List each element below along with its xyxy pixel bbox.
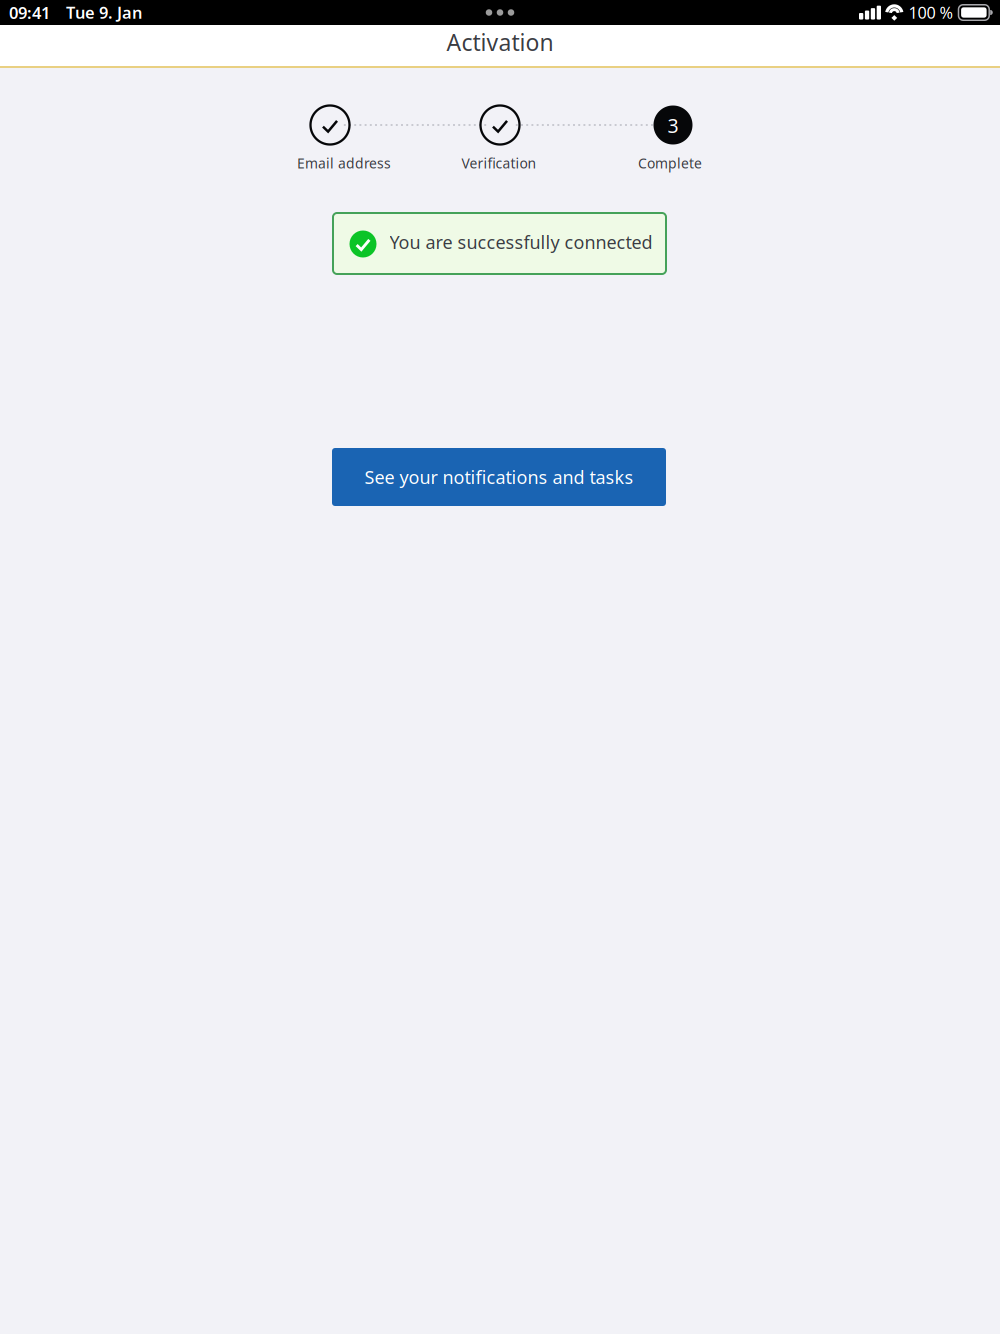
staticText: 09:41 [9, 1, 50, 24]
staticText: Activation [446, 26, 553, 58]
staticText: You are successfully connected [389, 230, 652, 254]
staticText: Verification [461, 154, 536, 172]
staticText: 100 % [908, 1, 953, 24]
staticText: Tue 9. Jan [66, 1, 142, 24]
staticText: 3 [667, 112, 678, 139]
staticText: Complete [638, 154, 702, 172]
button[interactable]: Step 2, Verification, completed [480, 105, 519, 144]
button[interactable]: Step 1, Email address, completed [310, 105, 349, 144]
button[interactable]: See your notifications and tasks [332, 448, 666, 506]
staticText: See your notifications and tasks [364, 465, 633, 489]
staticText: Email address [297, 154, 391, 172]
